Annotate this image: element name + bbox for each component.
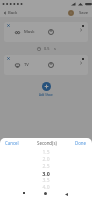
staticText: 0.5 [44,46,50,51]
staticText: Add Show [39,93,53,97]
staticText: Second(s) [37,140,57,146]
button[interactable]: Home [44,192,47,195]
button[interactable]: Cancel [5,140,19,146]
button[interactable]: Remove [7,24,10,27]
button[interactable]: Back [65,193,68,196]
button[interactable]: Remove [4,55,88,75]
button[interactable]: 3.0 [0,170,92,177]
button[interactable]: Remove [4,22,88,42]
staticText: 2.5 [42,163,50,170]
staticText: 3.5 [42,177,50,184]
button[interactable]: Account [68,10,74,16]
button[interactable]: 2.0 [0,156,92,163]
staticText: 3.0 [42,170,50,177]
staticText: 2.0 [42,156,50,163]
staticText: Mask [24,29,35,35]
button[interactable]: Save [78,10,90,16]
button[interactable]: 4.0 [0,184,92,191]
staticText: Back [8,10,18,16]
button[interactable]: 0.5 [36,45,57,52]
button[interactable]: Add show [42,82,51,91]
button[interactable]: Back [2,10,19,16]
button[interactable]: Done [75,140,87,146]
button[interactable]: 2.5 [0,163,92,170]
button[interactable]: Power [48,62,54,68]
button[interactable]: 1.5 [0,149,92,156]
staticText: Cancel [5,140,19,146]
button[interactable]: 3.5 [0,177,92,184]
staticText: 1.5 [42,149,50,156]
staticText: 4.0 [42,184,50,191]
staticText: Done [75,140,87,146]
staticText: Save [79,10,89,16]
staticText: s [54,46,56,51]
button[interactable]: Details [79,61,83,65]
button[interactable]: Remove [7,57,10,60]
button[interactable]: Details [79,28,83,32]
button[interactable]: Power [48,29,54,35]
staticText: TV [24,62,29,68]
